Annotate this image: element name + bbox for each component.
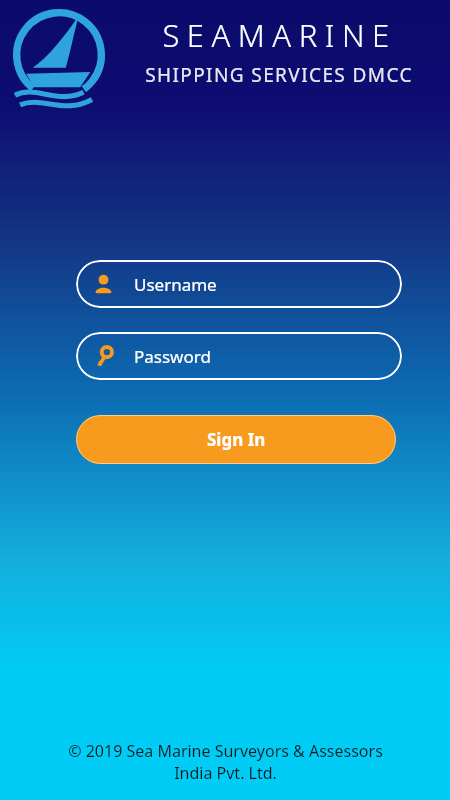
staticText: © 2019 Sea Marine Surveyors & Assessors …	[68, 740, 383, 784]
button[interactable]: Sign In	[76, 415, 396, 464]
staticText: Password	[134, 345, 211, 368]
staticText: Sign In	[207, 428, 266, 451]
button[interactable]: Password	[76, 332, 402, 380]
other: Sea Marine logo	[8, 8, 110, 108]
staticText: Username	[134, 273, 217, 296]
staticText: SEAMARINE	[162, 14, 397, 56]
staticText: SHIPPING SERVICES DMCC	[145, 62, 413, 88]
button[interactable]: Username	[76, 260, 402, 308]
